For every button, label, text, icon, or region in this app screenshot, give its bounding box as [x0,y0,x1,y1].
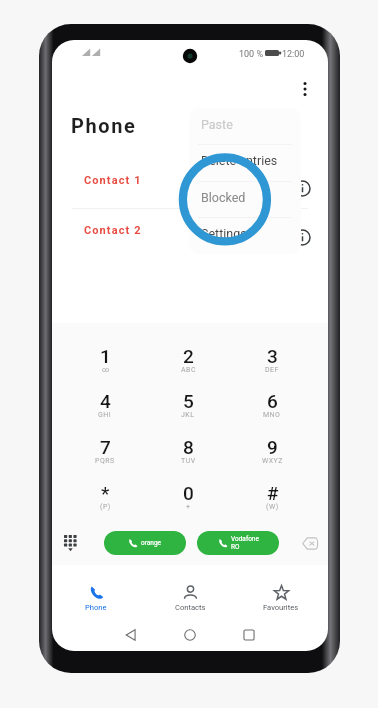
button[interactable]: # [231,482,313,524]
button[interactable]: Favourites [239,585,323,619]
button[interactable]: Vodafone RO [197,531,279,555]
staticText: 2 [183,345,194,367]
button[interactable]: 1 [64,345,146,387]
staticText: 8 [183,436,194,458]
button[interactable]: Backspace [297,530,323,556]
staticText: orange [141,539,162,547]
staticText: JKL [181,411,195,419]
button[interactable]: 0 [147,482,229,524]
staticText: Favourites [263,603,299,612]
button[interactable]: 4 [64,390,146,432]
staticText: 100 % [239,49,263,60]
staticText: Vodafone RO [231,535,259,551]
button[interactable]: Blocked [189,181,301,217]
button[interactable]: 8 [147,436,229,478]
staticText: # [267,482,279,504]
button[interactable]: Contact 1 [52,163,328,197]
button[interactable]: Contact details [287,222,317,252]
button[interactable]: orange [104,531,186,555]
staticText: 9 [267,436,278,458]
staticText: 3 [267,345,278,367]
button[interactable]: Paste [189,108,301,144]
button[interactable]: More options [290,74,320,104]
button[interactable]: Show keypad [57,530,83,556]
staticText: PQRS [95,457,115,465]
button[interactable]: 6 [231,390,313,432]
staticText: 6 [267,390,278,412]
staticText: Blocked [201,190,246,205]
button[interactable]: Contact 2 [52,213,328,247]
button[interactable]: Contacts [148,585,232,619]
button[interactable]: Recents [235,621,263,649]
staticText: Delete entries [201,153,278,168]
button[interactable]: Contact details [287,173,317,203]
staticText: TUV [181,457,196,465]
button[interactable]: 3 [231,345,313,387]
staticText: 12:00 [282,49,305,60]
button[interactable]: Back [117,621,145,649]
staticText: Contact 2 [84,224,142,237]
staticText: DEF [265,366,279,374]
staticText: (W) [266,503,279,511]
staticText: (P) [100,503,111,511]
staticText: 7 [100,436,111,458]
staticText: 0 [183,482,194,504]
staticText: Paste [201,117,233,132]
button[interactable]: Home [176,621,204,649]
staticText: Contact 1 [84,174,142,187]
staticText: Settings [201,226,247,241]
button[interactable]: Phone [54,585,138,619]
staticText: ∞ [102,366,110,374]
staticText: 4 [100,390,111,412]
staticText: 1 [100,345,111,367]
staticText: GHI [98,411,112,419]
staticText: WXYZ [262,457,283,465]
button[interactable]: Delete entries [189,144,301,180]
staticText: Phone [71,114,137,137]
button[interactable]: 9 [231,436,313,478]
staticText: MNO [263,411,281,419]
staticText: 5 [183,390,194,412]
button[interactable]: Settings [189,217,301,253]
staticText: Contacts [175,603,206,612]
button[interactable]: 2 [147,345,229,387]
button[interactable]: * [64,482,146,524]
staticText: ABC [181,366,196,374]
staticText: Phone [85,603,107,612]
staticText: + [186,503,191,511]
staticText: * [101,482,110,504]
button[interactable]: 5 [147,390,229,432]
button[interactable]: 7 [64,436,146,478]
